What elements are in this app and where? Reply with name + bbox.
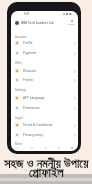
staticText: Settings [15, 88, 27, 92]
button[interactable]: Wallet [52, 144, 65, 151]
staticText: Legal [15, 116, 23, 120]
staticText: APP Language [23, 96, 45, 100]
button[interactable]: Reward [68, 20, 75, 26]
staticText: Promo [23, 78, 34, 82]
staticText: প্রোফাইল [0, 167, 92, 179]
button[interactable]: Payment [11, 48, 78, 58]
button[interactable]: Terms & Conditions [11, 120, 78, 130]
staticText: সহজ ও নমনীয় উপায়ে [0, 155, 92, 172]
staticText: Offer [15, 61, 23, 65]
button[interactable]: Search [25, 144, 39, 151]
staticText: Discount [23, 69, 37, 73]
button[interactable]: Profile [11, 38, 78, 48]
button[interactable]: APP Language [11, 93, 78, 103]
staticText: More [15, 142, 23, 146]
button[interactable]: Discount [11, 66, 78, 76]
staticText: Terms & Conditions [23, 123, 53, 127]
staticText: Privacy policy [23, 133, 44, 137]
button[interactable]: Promo [11, 75, 78, 85]
staticText: Account [15, 35, 27, 39]
staticText: BRB Tech Leaders Ltd [21, 21, 54, 25]
button[interactable]: Profile avatar [15, 21, 19, 25]
button[interactable]: Permission [11, 103, 78, 113]
staticText: Reward [68, 23, 75, 26]
button[interactable]: Orders [39, 144, 52, 151]
button[interactable]: Home [11, 144, 25, 151]
staticText: Permission [23, 106, 40, 110]
button[interactable]: Account [65, 144, 78, 151]
staticText: 9:41 [24, 12, 30, 16]
staticText: Payment [23, 51, 37, 55]
button[interactable]: Privacy policy [11, 130, 78, 140]
staticText: Profile [23, 41, 33, 45]
